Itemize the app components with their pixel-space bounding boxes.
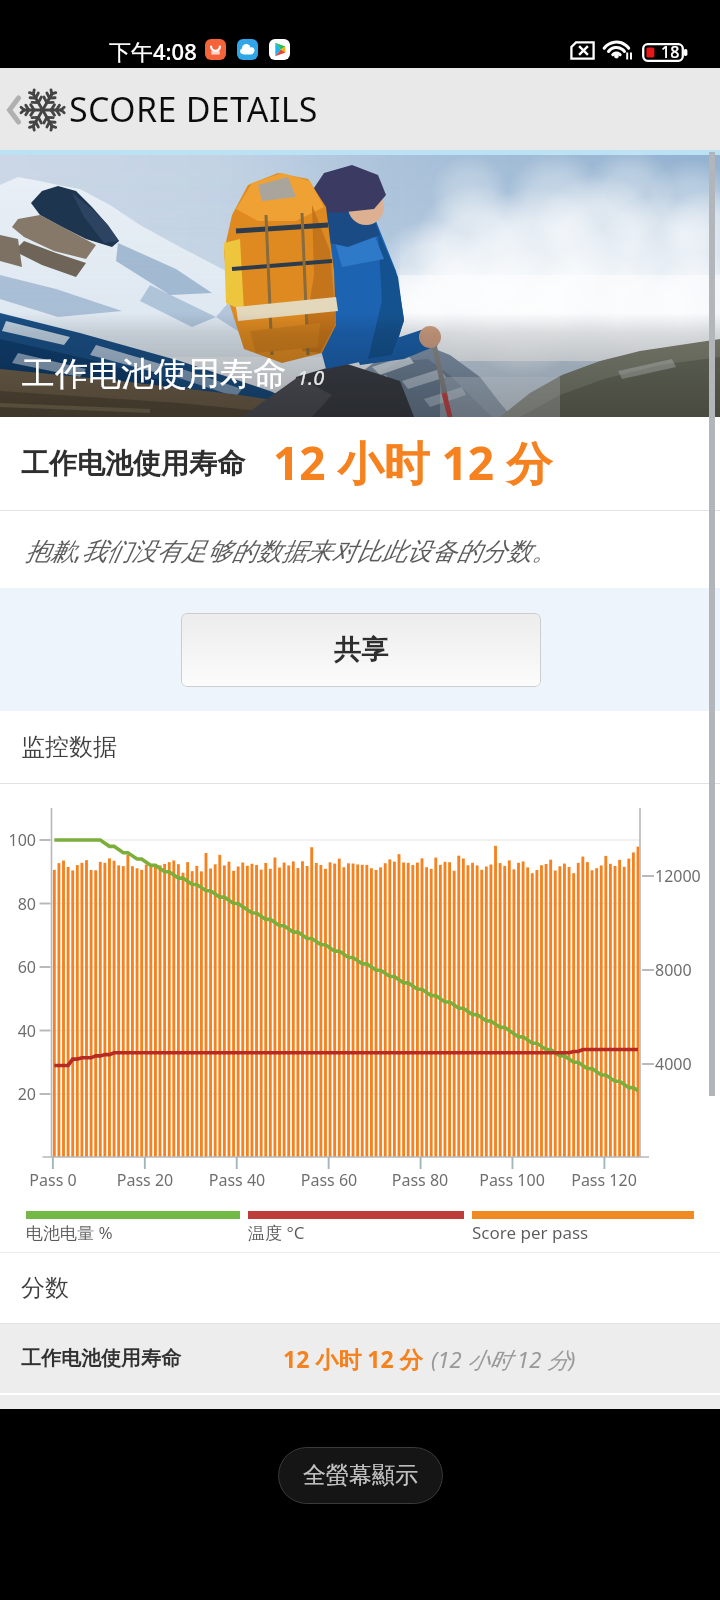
staticText: SCORE DETAILS	[69, 86, 318, 132]
staticText: 12 小时 12 分	[283, 1343, 423, 1374]
staticText: 全螢幕顯示	[303, 1461, 418, 1490]
staticText: 20	[0, 1083, 36, 1105]
staticText: Pass 60	[269, 1169, 389, 1191]
staticText: Pass 100	[452, 1169, 572, 1191]
staticText: 分数	[21, 1273, 69, 1303]
staticText: 4000	[655, 1053, 692, 1075]
button[interactable]: 全螢幕顯示	[278, 1447, 443, 1504]
staticText: 工作电池使用寿命	[21, 1346, 181, 1371]
staticText: 下午4:08	[109, 36, 197, 66]
staticText: 共享	[334, 633, 388, 667]
staticText: 80	[0, 893, 36, 915]
staticText: (12 小时 12 分)	[431, 1344, 576, 1374]
staticText: 电池电量 %	[26, 1221, 113, 1244]
staticText: 8000	[655, 959, 692, 981]
staticText: 12000	[655, 865, 701, 887]
staticText: 100	[0, 829, 36, 851]
staticText: 监控数据	[21, 732, 117, 762]
staticText: Pass 40	[177, 1169, 297, 1191]
staticText: 18	[661, 41, 680, 63]
button[interactable]: Back	[0, 68, 70, 150]
staticText: Score per pass	[472, 1221, 589, 1244]
staticText: 1.0	[297, 364, 325, 391]
staticText: Pass 120	[544, 1169, 664, 1191]
staticText: 抱歉,我们没有足够的数据来对比此设备的分数。	[25, 533, 557, 567]
staticText: 温度 °C	[248, 1221, 305, 1244]
staticText: 工作电池使用寿命	[21, 446, 245, 481]
staticText: Pass 20	[85, 1169, 205, 1191]
staticText: Pass 80	[360, 1169, 480, 1191]
staticText: 工作电池使用寿命	[22, 353, 286, 395]
staticText: 40	[0, 1020, 36, 1042]
other: No SIM	[570, 41, 595, 60]
staticText: Pass 0	[0, 1169, 113, 1191]
staticText: 60	[0, 956, 36, 978]
staticText: 12 小时 12 分	[273, 431, 553, 494]
button[interactable]: 共享	[181, 613, 541, 687]
